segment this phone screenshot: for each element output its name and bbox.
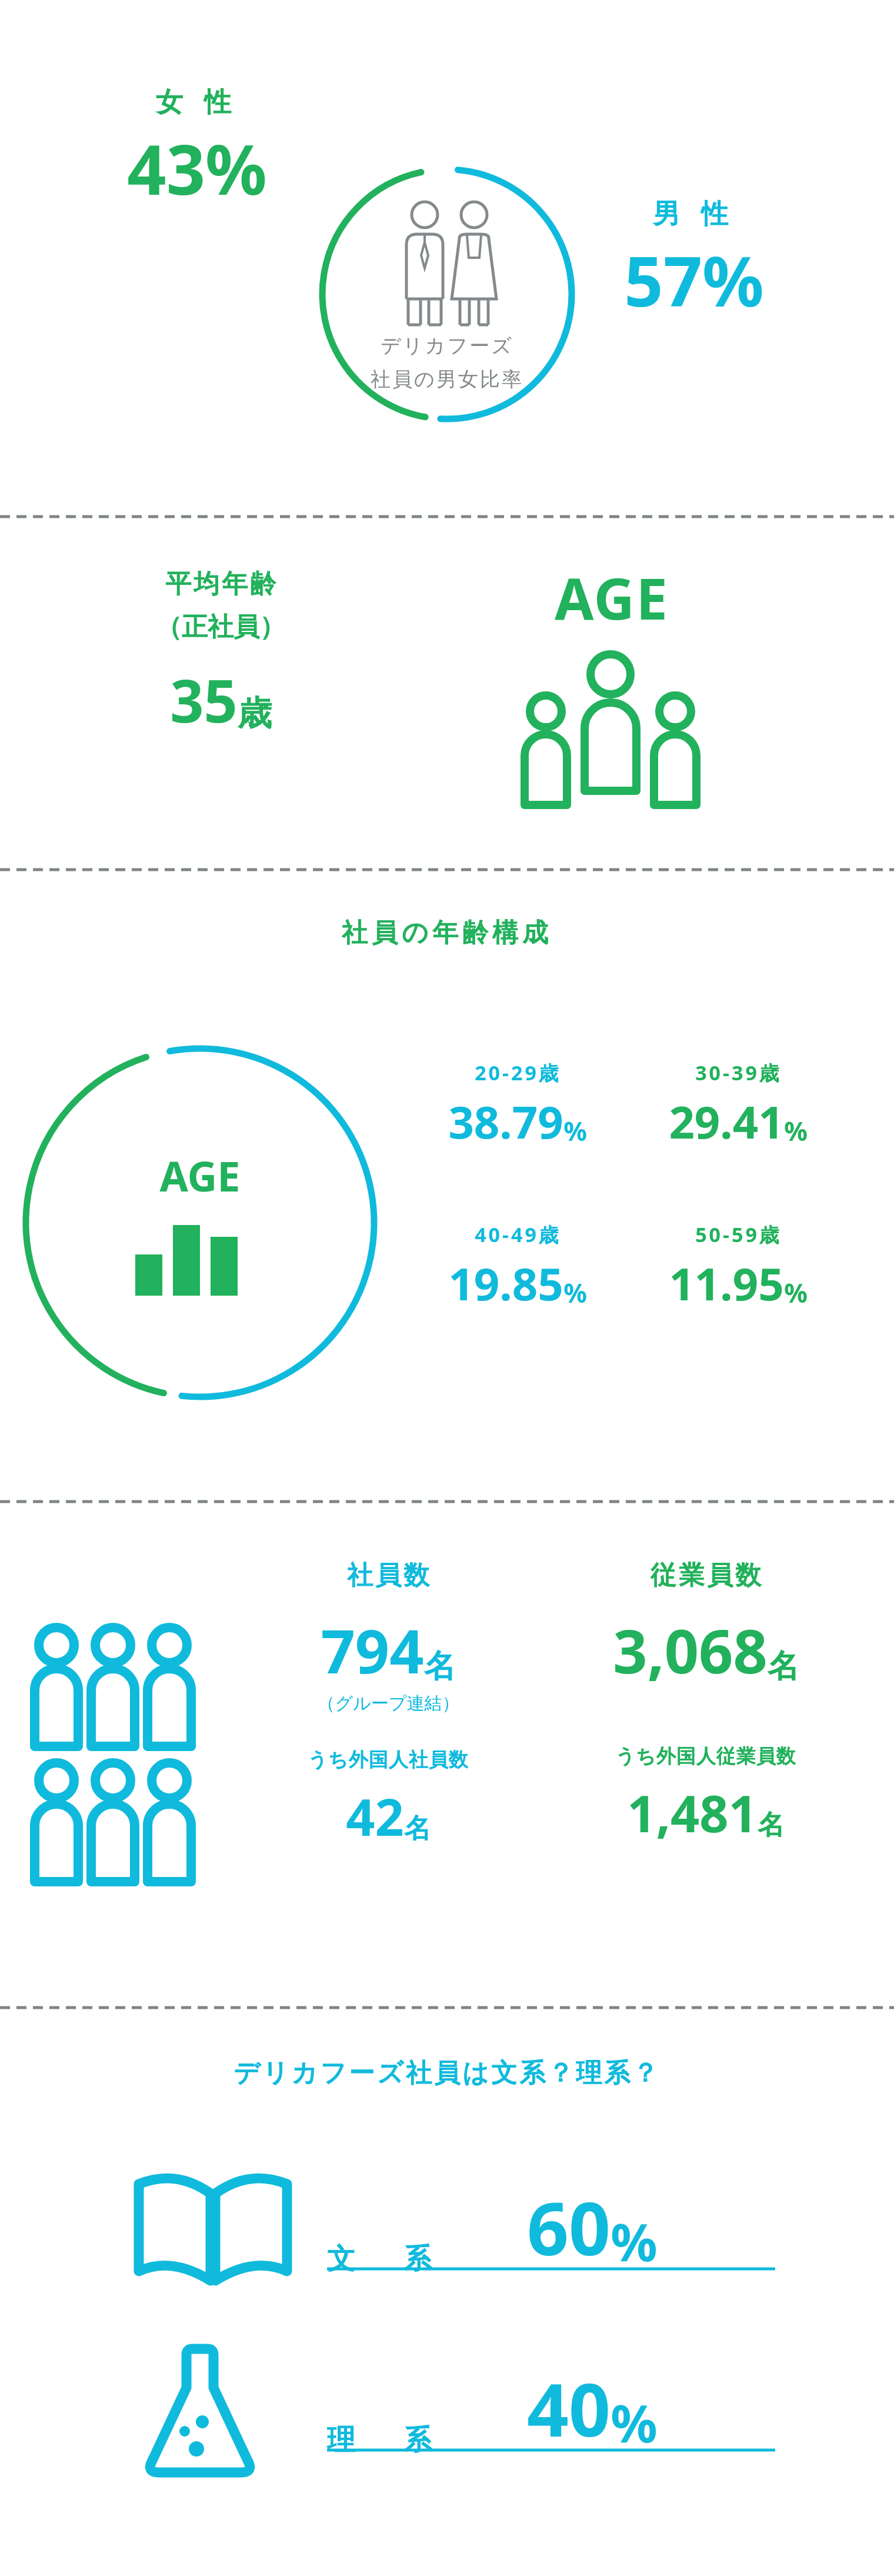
staticText: 文 [327,2241,403,2277]
button[interactable]: 50-59歳 [632,1221,844,1314]
button[interactable]: 20-29歳 [412,1059,623,1152]
staticText: % [784,1275,808,1310]
staticText: 11.95 [669,1253,784,1314]
staticText: % [563,1113,587,1149]
button[interactable]: Science flask [147,2344,254,2480]
staticText: 平均年齢 [164,568,277,600]
staticText: 40 [527,2358,611,2458]
staticText: 43% [127,122,267,215]
staticText: 社員の男女比率 [371,367,523,392]
staticText: 50-59歳 [695,1221,782,1248]
staticText: % [611,2387,658,2458]
staticText: 57% [624,234,764,327]
staticText: 794 [321,1609,424,1691]
button[interactable]: 男 性 [606,194,782,327]
staticText: うち外国人社員数 [308,1748,469,1772]
staticText: うち外国人従業員数 [615,1744,796,1769]
staticText: 系 [403,2422,527,2458]
staticText: 従業員数 [649,1559,762,1592]
button[interactable]: Age composition chart [26,1049,374,1397]
button[interactable]: 女 性 [109,82,285,215]
staticText: 名 [768,1646,799,1686]
staticText: デリカフーズ [381,333,513,358]
button[interactable]: 40-49歳 [412,1221,623,1314]
staticText: % [784,1113,808,1149]
button[interactable]: 理 [327,2358,780,2458]
staticText: 名 [758,1808,785,1842]
button[interactable]: 文 [327,2177,780,2277]
staticText: % [563,1275,587,1310]
button[interactable]: Humanities open book [136,2172,291,2288]
staticText: 40-49歳 [475,1221,561,1248]
staticText: AGE [518,559,706,636]
staticText: 社員の年齢構成 [241,917,653,949]
staticText: 19.85 [448,1253,563,1314]
button[interactable]: 30-39歳 [632,1059,844,1152]
staticText: 29.41 [669,1091,784,1152]
staticText: 歳 [238,692,272,735]
staticText: 20-29歳 [475,1059,561,1086]
staticText: 1,481 [627,1778,758,1847]
staticText: 60 [527,2177,611,2277]
button[interactable]: Employee count illustration [29,1618,206,1877]
staticText: 理 [327,2422,403,2458]
staticText: 男 性 [653,194,735,231]
staticText: 系 [403,2241,527,2277]
staticText: AGE [112,1147,288,1203]
staticText: 42 [346,1782,404,1851]
staticText: 社員数 [346,1559,431,1592]
staticText: 女 性 [156,82,238,119]
staticText: 38.79 [448,1091,563,1152]
staticText: 3,068 [613,1609,768,1691]
staticText: 名 [424,1646,456,1686]
staticText: % [611,2206,658,2277]
staticText: 35 [170,660,238,740]
button[interactable]: Employees age icon [506,641,718,824]
staticText: （グループ連結） [317,1692,460,1715]
staticText: （正社員） [156,611,285,643]
button[interactable]: Gender ratio chart [321,169,573,422]
staticText: 30-39歳 [695,1059,782,1086]
staticText: デリカフーズ社員は文系？理系？ [147,2057,747,2089]
staticText: 名 [404,1812,431,1846]
